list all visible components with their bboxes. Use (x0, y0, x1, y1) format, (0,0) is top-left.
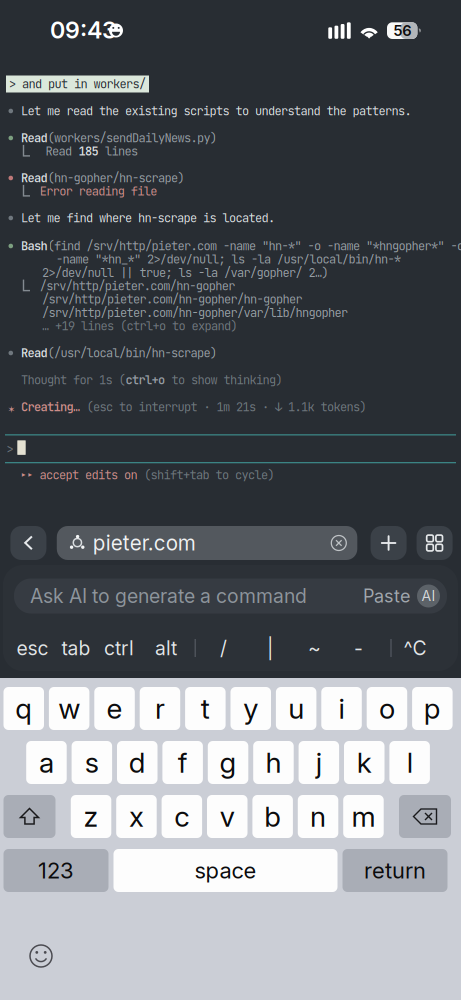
staticText: pieter.com (93, 530, 196, 555)
button[interactable]: Delete (399, 795, 451, 838)
button[interactable]: a (26, 741, 67, 784)
button[interactable]: ctrl (93, 634, 145, 662)
button[interactable]: d (117, 741, 157, 784)
staticText: 185 (78, 143, 98, 159)
staticText: 56 (393, 22, 411, 39)
staticText: q (15, 692, 32, 725)
staticText: i (338, 692, 344, 725)
button[interactable]: p (412, 687, 453, 730)
staticText: Read (45, 143, 78, 159)
staticText: > and put in workers/ (9, 76, 146, 92)
staticText: j (316, 746, 322, 779)
button[interactable]: o (367, 687, 407, 730)
staticText: alt (155, 637, 177, 660)
button[interactable]: l (389, 741, 430, 784)
button[interactable]: t (185, 687, 226, 730)
staticText: r (155, 692, 165, 725)
staticText: 123 (38, 857, 74, 884)
staticText: a (39, 746, 54, 779)
button[interactable]: - (332, 634, 384, 662)
button[interactable]: New tab (371, 526, 407, 560)
staticText: (shift+tab to cycle) (137, 467, 274, 483)
staticText: Ask AI to generate a command (30, 584, 307, 608)
button[interactable]: Back (10, 526, 46, 560)
button[interactable]: 123 (3, 849, 108, 892)
staticText: - (354, 637, 363, 660)
staticText: Let me read the existing scripts to unde… (21, 103, 411, 119)
staticText: t (201, 692, 210, 725)
staticText: Read (21, 130, 47, 146)
button[interactable]: q (3, 687, 44, 730)
button[interactable]: ^C (389, 634, 441, 662)
staticText: (workers/sendDailyNews.py) (47, 130, 217, 146)
staticText: m (351, 800, 375, 833)
staticText: return (364, 857, 426, 884)
staticText: -name "*hn_*" 2>/dev/null; ls -la /usr/l… (56, 251, 401, 267)
staticText: … +19 lines (ctrl+o to expand) (42, 318, 237, 334)
staticText: 09:43 (50, 16, 117, 44)
button[interactable]: r (140, 687, 180, 730)
staticText: /srv/http/pieter.com/hn-gopher/var/lib/h… (42, 305, 348, 321)
staticText: g (219, 746, 236, 779)
button[interactable]: ~ (288, 634, 340, 662)
button[interactable]: j (299, 741, 339, 784)
button[interactable]: Shift (3, 795, 55, 838)
staticText: f (178, 746, 188, 779)
button[interactable]: alt (140, 634, 192, 662)
button[interactable]: i (321, 687, 362, 730)
button[interactable]: space (113, 849, 337, 892)
button[interactable]: esc (6, 634, 58, 662)
button[interactable]: Tabs (417, 526, 453, 560)
staticText: AI (421, 587, 435, 604)
staticText: w (58, 692, 80, 725)
staticText: (hn-gopher/hn-scrape) (47, 170, 184, 186)
button[interactable]: y (230, 687, 271, 730)
staticText: Let me find where hn-scrape is located. (21, 210, 275, 226)
staticText: to show thinking) (165, 372, 282, 388)
button[interactable]: c (162, 795, 202, 838)
button[interactable]: k (344, 741, 384, 784)
button[interactable]: e (94, 687, 135, 730)
button[interactable]: x (116, 795, 157, 838)
button[interactable]: Emoji (29, 944, 53, 968)
staticText: k (357, 746, 372, 779)
button[interactable]: Ask AI to generate a command (14, 578, 447, 613)
staticText: h (265, 746, 281, 779)
button[interactable]: u (276, 687, 316, 730)
button[interactable]: h (253, 741, 294, 784)
button[interactable]: s (72, 741, 112, 784)
staticText: y (243, 692, 258, 725)
button[interactable]: z (71, 795, 111, 838)
staticText: c (174, 800, 189, 833)
button[interactable]: m (343, 795, 384, 838)
staticText: 2>/dev/null || true; ls -la /var/gopher/… (42, 265, 328, 281)
staticText: (find /srv/http/pieter.com -name "hn-*" … (47, 238, 461, 254)
button[interactable]: g (208, 741, 248, 784)
staticText: s (85, 746, 99, 779)
staticText: u (288, 692, 304, 725)
staticText: ▸▸ accept edits on (20, 467, 137, 483)
staticText: Read (21, 345, 47, 361)
button[interactable]: / (197, 634, 249, 662)
staticText: | (267, 637, 273, 660)
staticText: tab (61, 637, 90, 660)
button[interactable]: n (298, 795, 338, 838)
button[interactable]: v (207, 795, 247, 838)
staticText: e (106, 692, 122, 725)
button[interactable]: pieter.com (57, 526, 357, 560)
staticText: Creating… (21, 399, 80, 415)
button[interactable]: | (244, 634, 296, 662)
staticText: v (220, 800, 235, 833)
staticText: / (220, 637, 227, 660)
staticText: ctrl (104, 637, 134, 660)
staticText: x (129, 800, 144, 833)
staticText: lines (98, 143, 138, 159)
button[interactable]: f (162, 741, 203, 784)
staticText: n (310, 800, 326, 833)
button[interactable]: w (49, 687, 89, 730)
button[interactable]: b (252, 795, 293, 838)
button[interactable]: tab (50, 634, 102, 662)
staticText: p (424, 692, 441, 725)
staticText: (/usr/local/bin/hn-scrape) (47, 345, 217, 361)
button[interactable]: return (342, 849, 447, 892)
